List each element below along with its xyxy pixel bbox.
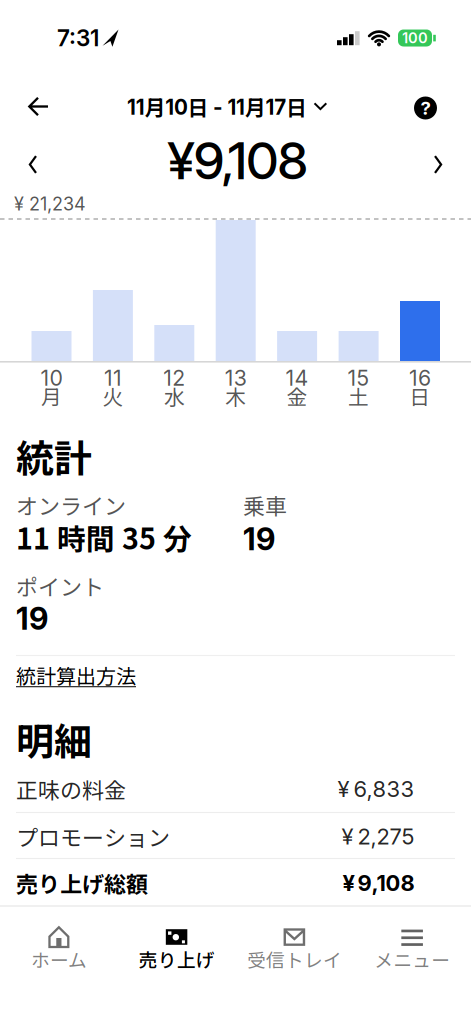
button[interactable]: 受信トレイ (235, 917, 353, 991)
staticText: ホーム (31, 945, 87, 972)
staticText: 12 (163, 365, 185, 391)
staticText: 11 時間 35 分 (16, 516, 192, 558)
button[interactable]: 統計算出方法 (16, 655, 216, 695)
button[interactable]: ホーム (0, 917, 118, 991)
button[interactable]: 11月10日 - 11月17日 (77, 84, 377, 128)
button[interactable]: Back (16, 84, 60, 128)
staticText: 明細 (16, 711, 92, 766)
staticText: 火 (102, 381, 123, 411)
staticText: ¥ 6,833 (337, 776, 414, 802)
staticText: 統計 (16, 428, 92, 483)
staticText: 16 (409, 365, 431, 391)
staticText: 14 (286, 365, 309, 391)
staticText: 19 (16, 600, 48, 637)
button[interactable]: 売り上げ (118, 917, 236, 991)
staticText: 15 (348, 365, 370, 391)
staticText: 13 (225, 365, 247, 391)
staticText: ¥ 21,234 (14, 193, 86, 215)
staticText: 11月10日 - 11月17日 (127, 91, 307, 121)
staticText: 金 (287, 381, 308, 411)
staticText: 10 (40, 365, 62, 391)
staticText: ? (420, 97, 430, 119)
staticText: 月 (41, 381, 62, 411)
staticText: 11 (104, 365, 122, 391)
staticText: 売り上げ総額 (16, 867, 148, 899)
staticText: 日 (409, 381, 430, 411)
staticText: ¥9,108 (167, 129, 307, 191)
staticText: ¥ 9,108 (342, 870, 414, 896)
button[interactable]: メニュー (353, 917, 471, 991)
staticText: 土 (348, 381, 369, 411)
staticText: 100 (402, 29, 428, 47)
staticText: 売り上げ (139, 945, 215, 972)
staticText: 統計算出方法 (16, 660, 136, 689)
staticText: 7:31 (57, 24, 99, 52)
staticText: 受信トレイ (247, 945, 342, 972)
button[interactable]: Next week (416, 142, 460, 186)
staticText: プロモーション (16, 821, 170, 852)
staticText: ポイント (16, 570, 104, 602)
button[interactable]: Previous week (11, 142, 55, 186)
staticText: オンライン (16, 489, 126, 521)
staticText: 19 (243, 520, 275, 557)
staticText: 水 (164, 381, 185, 411)
staticText: 乗車 (243, 489, 287, 521)
button[interactable]: Help (414, 96, 437, 119)
staticText: メニュー (374, 945, 450, 972)
staticText: ¥ 2,275 (341, 823, 414, 850)
staticText: 正味の料金 (16, 773, 126, 805)
staticText: 木 (225, 381, 246, 411)
